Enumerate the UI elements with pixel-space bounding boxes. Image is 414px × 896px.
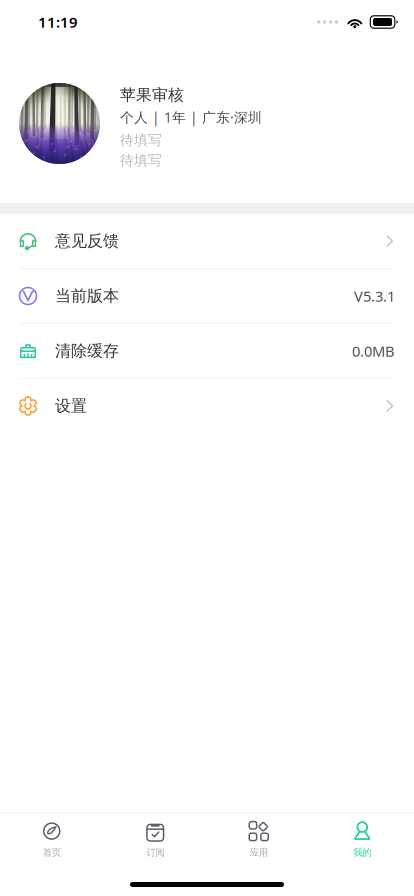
staticText: V5.3.1: [354, 286, 395, 306]
button[interactable]: 当前版本: [0, 269, 414, 324]
staticText: 个人 | 1年 | 广东·深圳: [120, 108, 262, 126]
staticText: 我的: [353, 847, 371, 858]
button[interactable]: 清除缓存: [0, 324, 414, 379]
button[interactable]: 我的: [310, 813, 414, 862]
button[interactable]: 首页: [0, 813, 103, 862]
button[interactable]: 苹果审核: [0, 44, 414, 203]
staticText: 0.0MB: [352, 341, 395, 361]
staticText: 订阅: [146, 847, 164, 858]
button[interactable]: 设置: [0, 379, 414, 434]
staticText: 首页: [43, 847, 61, 858]
button[interactable]: 订阅: [103, 813, 207, 862]
staticText: 设置: [55, 396, 87, 416]
staticText: 应用: [250, 847, 268, 858]
button[interactable]: 应用: [207, 813, 310, 862]
staticText: 待填写: [120, 152, 162, 169]
staticText: 意见反馈: [55, 231, 119, 251]
staticText: 当前版本: [55, 286, 119, 306]
staticText: 清除缓存: [55, 341, 119, 361]
button[interactable]: 意见反馈: [0, 214, 414, 269]
staticText: 苹果审核: [120, 85, 184, 105]
staticText: 11:19: [38, 12, 78, 32]
staticText: 待填写: [120, 131, 162, 149]
